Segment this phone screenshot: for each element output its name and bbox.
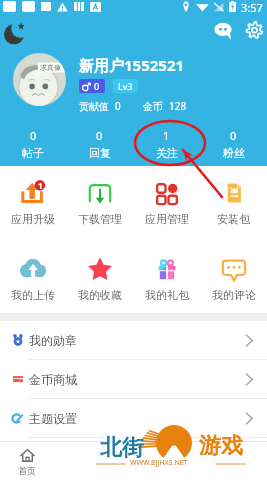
staticText: 贡献值 <box>79 100 109 113</box>
staticText: 128 <box>169 99 187 113</box>
staticText: 0 <box>115 99 121 113</box>
staticText: 帖子 <box>22 146 44 160</box>
staticText: 1 <box>163 128 170 143</box>
staticText: 我的勋章 <box>29 333 77 348</box>
staticText: 我的上传 <box>11 288 55 302</box>
staticText: 新用户1552521 <box>79 55 185 75</box>
staticText: 北街 <box>100 434 144 462</box>
staticText: WWW.BJJHXS.NET <box>130 458 188 468</box>
staticText: 游戏 <box>199 432 243 460</box>
staticText: 主题设置 <box>29 411 77 426</box>
staticText: 关注 <box>156 146 178 160</box>
staticText: 我的礼包 <box>145 288 189 302</box>
staticText: 0 <box>30 128 37 143</box>
button[interactable]: 首页 <box>18 448 36 476</box>
staticText: 0 <box>96 128 103 143</box>
staticText: 首页 <box>18 465 36 476</box>
staticText: 3:57 <box>241 0 263 13</box>
staticText: 回复 <box>89 146 111 160</box>
staticText: 下载管理 <box>78 212 122 226</box>
staticText: 金币 <box>143 100 163 113</box>
button[interactable]: 0 <box>200 128 267 160</box>
button[interactable]: Night mode <box>4 22 26 44</box>
button[interactable]: 我的礼包 <box>133 254 200 302</box>
staticText: 0 <box>230 128 237 143</box>
button[interactable]: 0 <box>0 128 66 160</box>
staticText: 0 <box>94 80 100 92</box>
button[interactable]: 安装包 <box>200 178 267 226</box>
button[interactable]: 应用管理 <box>133 178 200 226</box>
button[interactable]: 下载管理 <box>66 178 133 226</box>
button[interactable]: 1 <box>0 178 66 226</box>
staticText: 我的收藏 <box>78 288 122 302</box>
staticText: 应用管理 <box>145 212 189 226</box>
staticText: Lv3 <box>118 80 133 92</box>
button[interactable]: Avatar <box>13 53 66 106</box>
button[interactable]: 我的勋章 <box>0 321 267 359</box>
staticText: 1 <box>38 180 43 191</box>
button[interactable]: Messages <box>214 22 232 40</box>
button[interactable]: Settings <box>246 22 263 39</box>
button[interactable]: 我的收藏 <box>66 254 133 302</box>
staticText: 金币商城 <box>29 372 77 387</box>
staticText: 安装包 <box>217 212 250 226</box>
button[interactable]: 金币商城 <box>0 360 267 398</box>
button[interactable]: 0 <box>66 128 133 160</box>
button[interactable]: 1 <box>133 128 200 160</box>
button[interactable]: 我的评论 <box>200 254 267 302</box>
staticText: 求真像 <box>40 63 61 72</box>
staticText: 应用升级 <box>11 212 55 226</box>
staticText: 粉丝 <box>223 146 245 160</box>
staticText: 我的评论 <box>212 288 256 302</box>
button[interactable]: 我的上传 <box>0 254 66 302</box>
button[interactable]: 主题设置 <box>0 399 267 437</box>
